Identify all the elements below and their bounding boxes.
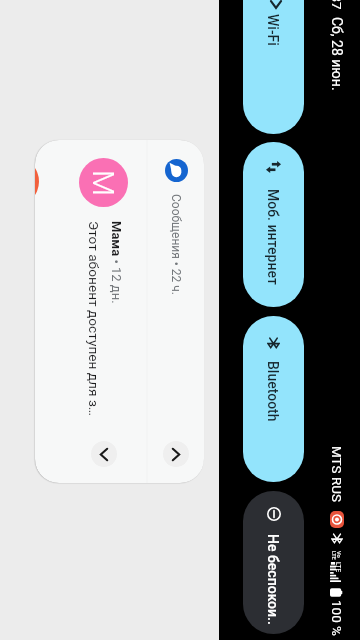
button[interactable]: Wi-Fi <box>243 0 304 134</box>
button[interactable]: Expand <box>91 441 117 467</box>
button[interactable]: Не беспокоить <box>243 491 304 634</box>
staticText: Сб, 28 июн. <box>329 17 345 91</box>
button[interactable]: Моб. интернет <box>243 142 304 307</box>
button[interactable]: Bluetooth <box>243 316 304 482</box>
staticText: MTS RUS <box>329 446 345 502</box>
staticText: LTE <box>330 551 337 560</box>
staticText: 100 % <box>329 600 345 636</box>
staticText: Vo <box>335 551 342 558</box>
staticText: Мама • 12 дн. <box>109 221 124 304</box>
staticText: Wi-Fi <box>265 14 281 46</box>
staticText: 17:37 <box>329 0 345 10</box>
staticText: Этот абонент доступен для з… <box>86 221 102 417</box>
staticText: Сообщения • 22 ч. <box>169 194 183 295</box>
button[interactable]: Collapse <box>163 441 189 467</box>
staticText: M <box>86 170 121 196</box>
staticText: Bluetooth <box>265 361 281 422</box>
other: Screen recorder <box>330 511 344 528</box>
staticText: Моб. интернет <box>265 189 281 285</box>
staticText: LTE <box>334 562 342 573</box>
staticText: Не беспокои.. <box>265 534 281 625</box>
